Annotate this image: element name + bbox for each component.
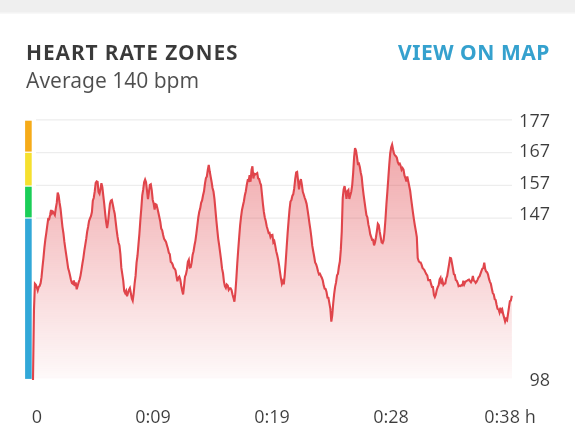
staticText: 147	[0, 201, 550, 226]
staticText: 0	[0, 404, 77, 429]
staticText: 0:09	[113, 404, 193, 429]
staticText: 0:19	[232, 404, 312, 429]
button[interactable]: HEART RATE ZONES	[26, 38, 239, 67]
staticText: 0:28	[351, 404, 431, 429]
staticText: 177	[0, 108, 550, 133]
button[interactable]: VIEW ON MAP	[398, 38, 550, 67]
staticText: HEART RATE ZONES	[26, 38, 239, 67]
staticText: 0:38 h	[470, 404, 550, 429]
staticText: 167	[0, 138, 550, 163]
staticText: VIEW ON MAP	[398, 38, 550, 67]
staticText: Average 140 bpm	[26, 66, 200, 95]
staticText: 157	[0, 170, 550, 195]
staticText: 98	[0, 367, 550, 392]
